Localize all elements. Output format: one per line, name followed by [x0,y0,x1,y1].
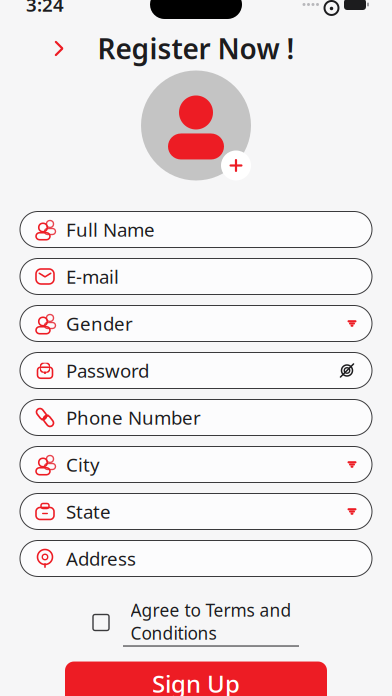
staticText: City [66,452,100,477]
staticText: Register Now ! [97,30,294,67]
button[interactable]: Gender [20,305,372,341]
button[interactable]: Address [20,540,372,576]
staticText: Agree to Terms and Conditions [130,598,291,644]
staticText: E-mail [66,264,119,289]
staticText: Address [66,546,136,571]
staticText: State [66,499,111,524]
button[interactable]: Change profile photo [121,70,271,180]
button[interactable]: Full Name [20,211,372,247]
button[interactable]: E-mail [20,258,372,294]
button[interactable]: Phone Number [20,399,372,435]
staticText: Password [66,358,149,383]
button[interactable]: Password [20,352,372,388]
staticText: Gender [66,311,133,336]
button[interactable]: Back [38,32,80,64]
staticText: 3:24 [26,0,64,17]
button[interactable]: State [20,493,372,529]
button[interactable]: Agree to Terms and Conditions [93,598,299,646]
button[interactable]: Sign Up [65,661,327,696]
staticText: Full Name [66,217,155,242]
staticText: Phone Number [66,405,201,430]
button[interactable]: City [20,446,372,482]
staticText: Sign Up [152,668,240,696]
